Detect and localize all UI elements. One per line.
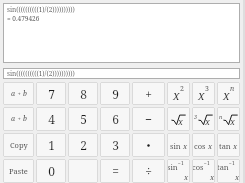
- staticText: +: [16, 90, 23, 98]
- button[interactable]: mixed fraction a plus b: [3, 107, 34, 131]
- button[interactable]: tan inverse x: [217, 159, 240, 183]
- button[interactable]: n root of x: [217, 107, 240, 131]
- staticText: sin((((((((((1)/(2)))))))))): [7, 5, 75, 14]
- button[interactable]: 9: [100, 82, 130, 105]
- button[interactable]: x to the power n: [217, 82, 240, 105]
- button[interactable]: square root of x: [167, 107, 190, 131]
- staticText: x: [206, 141, 213, 151]
- staticText: x: [235, 162, 240, 182]
- staticText: a: [11, 89, 16, 99]
- staticText: x: [181, 141, 188, 151]
- button[interactable]: 3 root of x: [192, 107, 215, 131]
- staticText: ÷: [145, 163, 152, 179]
- button[interactable]: 0: [36, 159, 66, 183]
- button[interactable]: 3: [100, 133, 130, 157]
- staticText: x: [178, 115, 183, 127]
- staticText: tan: [217, 162, 229, 172]
- button[interactable]: x to the power 3: [192, 82, 215, 105]
- button[interactable]: sin((((((((((1)/(2)))))))))): [3, 68, 240, 79]
- button[interactable]: −: [132, 107, 165, 131]
- staticText: −: [145, 111, 152, 127]
- staticText: 3: [112, 137, 119, 153]
- button[interactable]: cos x: [192, 133, 215, 157]
- staticText: x: [205, 115, 210, 127]
- staticText: 0: [48, 163, 55, 179]
- staticText: cos: [194, 141, 206, 151]
- staticText: −1: [229, 160, 235, 167]
- staticText: x: [223, 87, 230, 103]
- staticText: cos: [192, 162, 204, 172]
- button[interactable]: Paste: [3, 159, 34, 183]
- staticText: 7: [48, 86, 55, 102]
- button[interactable]: 7: [36, 82, 66, 105]
- staticText: n: [230, 84, 235, 94]
- button[interactable]: 8: [68, 82, 98, 105]
- staticText: 3: [194, 113, 198, 120]
- staticText: 2: [80, 137, 87, 153]
- staticText: sin: [167, 162, 178, 172]
- staticText: +: [145, 86, 152, 102]
- staticText: Paste: [9, 166, 28, 176]
- staticText: x: [231, 141, 238, 151]
- staticText: +: [16, 115, 23, 123]
- button[interactable]: sin inverse x: [167, 159, 190, 183]
- staticText: x: [198, 87, 205, 103]
- staticText: 6: [112, 111, 119, 127]
- staticText: b: [23, 114, 27, 124]
- staticText: 5: [80, 111, 87, 127]
- button[interactable]: tan x: [217, 133, 240, 157]
- staticText: 2: [180, 84, 184, 94]
- button[interactable]: mixed fraction a plus b: [3, 82, 34, 105]
- staticText: x: [173, 87, 180, 103]
- staticText: −1: [178, 160, 184, 167]
- button[interactable]: +: [132, 82, 165, 105]
- staticText: x: [230, 115, 235, 127]
- staticText: x: [210, 162, 215, 182]
- staticText: b: [23, 89, 27, 99]
- button[interactable]: =: [100, 159, 130, 183]
- button[interactable]: 6: [100, 107, 130, 131]
- staticText: a: [11, 114, 16, 124]
- button[interactable]: ÷: [132, 159, 165, 183]
- button[interactable]: 5: [68, 107, 98, 131]
- button[interactable]: cos inverse x: [192, 159, 215, 183]
- button[interactable]: decimal point: [132, 133, 165, 157]
- button[interactable]: 1: [36, 133, 66, 157]
- staticText: −1: [204, 160, 210, 167]
- button[interactable]: blank: [68, 159, 98, 183]
- staticText: sin((((((((((1)/(2)))))))))): [7, 69, 75, 78]
- staticText: 1: [48, 137, 55, 153]
- button[interactable]: x to the power 2: [167, 82, 190, 105]
- staticText: 8: [80, 86, 87, 102]
- staticText: tan: [219, 141, 231, 151]
- button[interactable]: 2: [68, 133, 98, 157]
- staticText: Copy: [10, 140, 28, 150]
- staticText: = 0.479426: [7, 14, 40, 23]
- staticText: 4: [48, 111, 55, 127]
- staticText: 9: [112, 86, 119, 102]
- staticText: sin: [170, 141, 181, 151]
- staticText: n: [219, 113, 223, 120]
- staticText: =: [112, 163, 119, 179]
- staticText: 3: [205, 84, 209, 94]
- button[interactable]: Copy: [3, 133, 34, 157]
- button[interactable]: 4: [36, 107, 66, 131]
- staticText: x: [184, 162, 190, 182]
- button[interactable]: sin x: [167, 133, 190, 157]
